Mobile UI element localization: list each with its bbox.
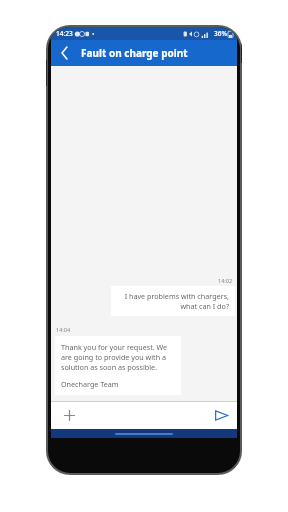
staticText: 36% (214, 29, 227, 38)
staticText: I have problems with chargers, what can … (117, 291, 229, 311)
staticText: Onecharge Team (61, 379, 119, 389)
button[interactable]: Add attachment (60, 406, 78, 424)
button[interactable]: Thank you for your request. We are going… (55, 336, 181, 395)
staticText: 14:04 (56, 326, 71, 333)
staticText: Thank you for your request. We are going… (61, 342, 175, 372)
button[interactable]: Back (51, 40, 77, 66)
button[interactable]: I have problems with chargers, what can … (111, 286, 235, 316)
staticText: 14:23 (56, 29, 73, 38)
staticText: 14:02 (218, 277, 233, 284)
staticText: Fault on charge point (81, 46, 188, 60)
button[interactable]: Send (212, 406, 230, 424)
